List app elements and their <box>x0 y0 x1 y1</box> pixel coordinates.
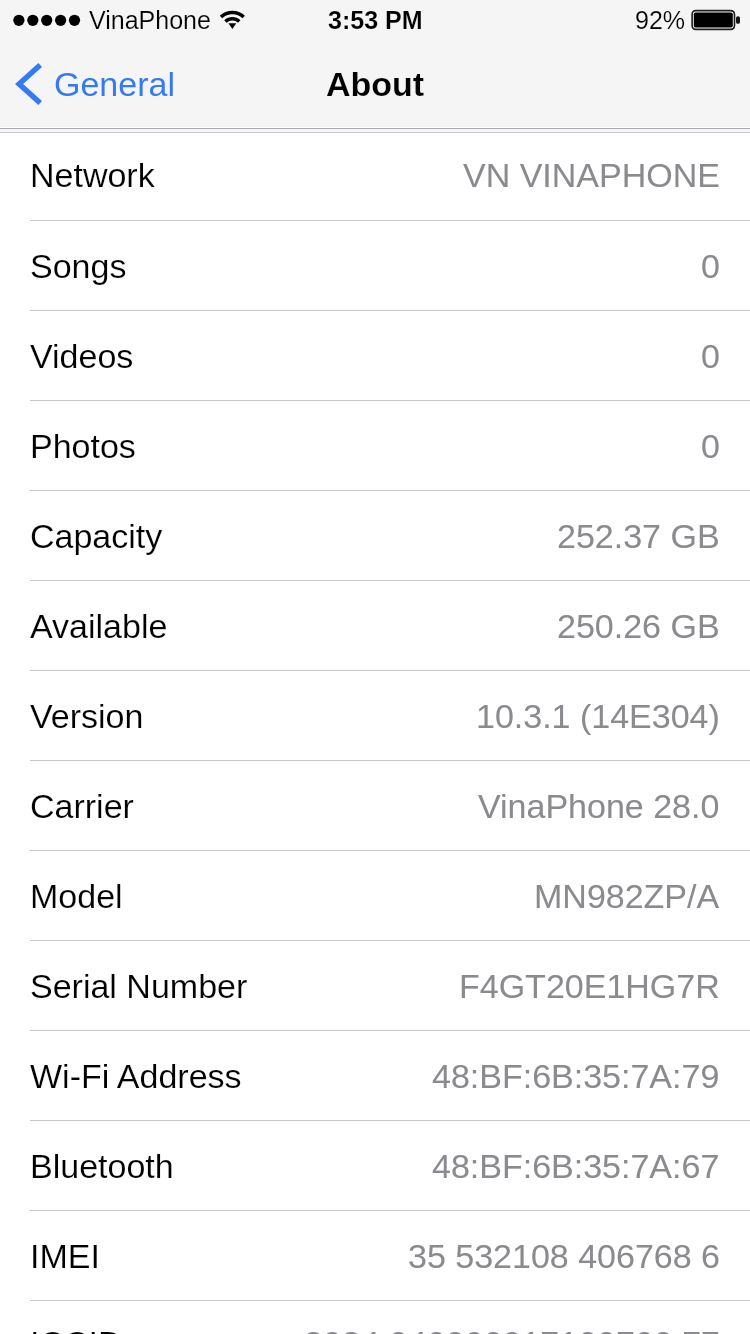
staticText: ICCID <box>30 1324 123 1334</box>
button[interactable]: General <box>0 54 189 114</box>
button[interactable]: Bluetooth <box>0 1121 750 1211</box>
button[interactable]: Songs <box>0 221 750 311</box>
button[interactable]: Available <box>0 581 750 671</box>
staticText: VinaPhone 28.0 <box>478 787 720 825</box>
staticText: Bluetooth <box>30 1147 174 1185</box>
staticText: VN VINAPHONE <box>463 156 720 194</box>
staticText: MN982ZP/A <box>534 877 720 915</box>
staticText: IMEI <box>30 1237 100 1275</box>
staticText: 0 <box>701 247 720 285</box>
button[interactable]: Serial Number <box>0 941 750 1031</box>
staticText: About <box>326 65 425 103</box>
staticText: 48:BF:6B:35:7A:79 <box>432 1057 720 1095</box>
staticText: 0 <box>701 427 720 465</box>
staticText: Available <box>30 607 168 645</box>
staticText: Songs <box>30 247 127 285</box>
staticText: Network <box>30 156 155 194</box>
button[interactable]: Version <box>0 671 750 761</box>
button[interactable]: Model <box>0 851 750 941</box>
button[interactable]: Photos <box>0 401 750 491</box>
button[interactable]: Network <box>0 133 750 221</box>
button[interactable]: Videos <box>0 311 750 401</box>
staticText: 8984 040000017100700 77 <box>304 1324 720 1334</box>
button[interactable]: ICCID <box>0 1301 750 1334</box>
staticText: Photos <box>30 427 136 465</box>
staticText: Carrier <box>30 787 134 825</box>
button[interactable]: Wi-Fi Address <box>0 1031 750 1121</box>
staticText: 35 532108 406768 6 <box>408 1237 720 1275</box>
staticText: Videos <box>30 337 134 375</box>
staticText: 3:53 PM <box>328 6 423 34</box>
staticText: VinaPhone <box>89 6 211 34</box>
button[interactable]: Capacity <box>0 491 750 581</box>
button[interactable]: IMEI <box>0 1211 750 1301</box>
staticText: 0 <box>701 337 720 375</box>
staticText: Version <box>30 697 144 735</box>
staticText: 252.37 GB <box>557 517 720 555</box>
button[interactable]: Carrier <box>0 761 750 851</box>
staticText: 48:BF:6B:35:7A:67 <box>432 1147 720 1185</box>
staticText: Model <box>30 877 123 915</box>
staticText: 92% <box>635 6 686 34</box>
staticText: General <box>54 65 175 103</box>
staticText: Serial Number <box>30 967 248 1005</box>
staticText: Wi-Fi Address <box>30 1057 242 1095</box>
staticText: 250.26 GB <box>557 607 720 645</box>
staticText: Capacity <box>30 517 163 555</box>
staticText: 10.3.1 (14E304) <box>476 697 720 735</box>
staticText: F4GT20E1HG7R <box>459 967 720 1005</box>
